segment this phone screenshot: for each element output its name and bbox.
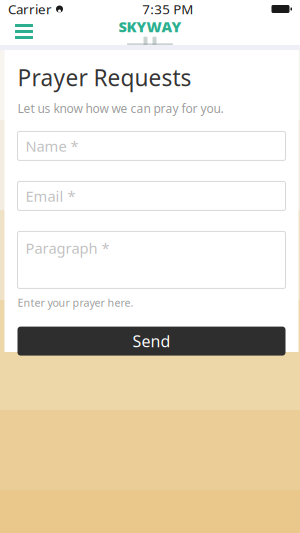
staticText: Email * bbox=[25, 186, 75, 206]
button[interactable]: Email * bbox=[17, 181, 285, 210]
button[interactable]: Name * bbox=[17, 131, 285, 160]
staticText: SKYWAY bbox=[118, 17, 181, 36]
staticText: Send bbox=[132, 330, 170, 352]
staticText: Enter your prayer here. bbox=[17, 295, 133, 310]
staticText: 7:35 PM bbox=[142, 0, 193, 18]
staticText: Name * bbox=[25, 136, 78, 156]
staticText: Prayer Requests bbox=[17, 62, 191, 92]
staticText: Carrier bbox=[8, 0, 52, 18]
staticText: Paragraph * bbox=[25, 238, 109, 258]
button[interactable]: Paragraph * bbox=[17, 231, 285, 288]
button[interactable]: Send bbox=[17, 327, 285, 356]
staticText: Let us know how we can pray for you. bbox=[17, 100, 223, 116]
button[interactable]: Menu bbox=[4, 18, 44, 45]
